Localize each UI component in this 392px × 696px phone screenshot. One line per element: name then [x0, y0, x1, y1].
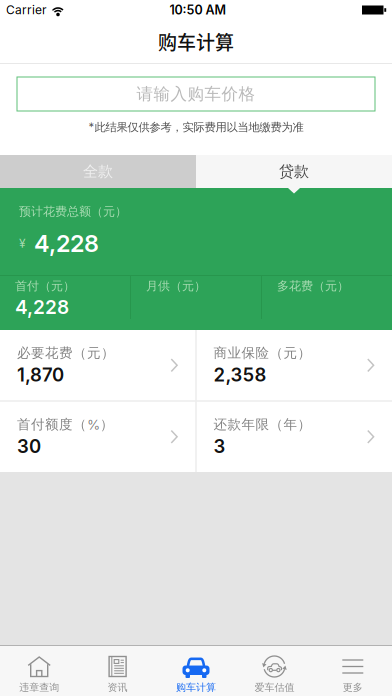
button[interactable]: 违章查询 — [0, 646, 78, 696]
staticText: 贷款 — [279, 162, 309, 181]
staticText: 购车计算 — [158, 28, 234, 55]
staticText: 30 — [17, 435, 41, 457]
button[interactable]: 商业保险（元） — [196, 330, 392, 400]
staticText: 1,870 — [17, 364, 64, 386]
button[interactable]: 资讯 — [78, 646, 157, 696]
button[interactable]: 更多 — [314, 646, 392, 696]
staticText: 资讯 — [108, 681, 128, 694]
staticText: 必要花费（元） — [17, 345, 115, 362]
staticText: 请输入购车价格 — [136, 84, 255, 104]
staticText: 还款年限（年） — [213, 416, 311, 433]
staticText: Carrier — [6, 3, 47, 17]
staticText: 首付额度（%） — [17, 416, 114, 433]
staticText: 10:50 AM — [169, 2, 226, 17]
staticText: 预计花费总额（元） — [19, 204, 127, 219]
staticText: 全款 — [83, 162, 113, 181]
staticText: 购车计算 — [176, 681, 216, 694]
staticText: *此结果仅供参考，实际费用以当地缴费为准 — [88, 120, 303, 134]
staticText: 3 — [213, 435, 225, 457]
button[interactable]: 贷款 — [196, 155, 392, 188]
staticText: 更多 — [343, 681, 363, 694]
staticText: ¥ — [19, 236, 26, 251]
button[interactable]: 必要花费（元） — [0, 330, 195, 400]
staticText: 4,228 — [15, 296, 69, 319]
button[interactable]: 还款年限（年） — [196, 401, 392, 472]
button[interactable]: 全款 — [0, 155, 196, 188]
staticText: 月供（元） — [146, 278, 206, 294]
button[interactable]: 爱车估值 — [235, 646, 314, 696]
staticText: 4,228 — [34, 229, 99, 257]
button[interactable]: 购车计算 — [157, 646, 235, 696]
button[interactable]: 首付额度（%） — [0, 401, 195, 472]
staticText: 多花费（元） — [277, 278, 349, 294]
button[interactable]: 请输入购车价格 — [17, 77, 375, 111]
staticText: 爱车估值 — [254, 681, 294, 694]
staticText: 违章查询 — [19, 681, 59, 694]
staticText: 商业保险（元） — [213, 345, 311, 362]
staticText: 2,358 — [213, 364, 266, 386]
staticText: 首付（元） — [15, 278, 75, 294]
